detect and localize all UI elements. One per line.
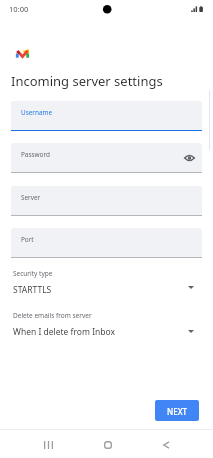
staticText: Security type xyxy=(13,269,53,278)
staticText: Port xyxy=(21,235,34,244)
button[interactable]: Recent apps xyxy=(40,437,56,453)
button[interactable]: Delete emails from server xyxy=(11,311,202,344)
staticText: Password xyxy=(21,150,50,159)
staticText: Incoming server settings xyxy=(11,72,163,90)
staticText: When I delete from Inbox xyxy=(13,326,115,338)
staticText: STARTTLS xyxy=(13,284,52,296)
staticText: Delete emails from server xyxy=(13,311,92,320)
button[interactable]: Server xyxy=(11,186,202,216)
other: Open Security type menu xyxy=(188,286,194,289)
staticText: NEXT xyxy=(167,406,188,417)
button[interactable]: Home xyxy=(99,436,116,453)
button[interactable]: Show password xyxy=(181,150,197,166)
staticText: Server xyxy=(21,193,41,202)
button[interactable]: Back xyxy=(158,437,174,453)
other: Open Delete emails from server menu xyxy=(188,330,194,333)
staticText: Username xyxy=(21,108,53,117)
button[interactable]: NEXT xyxy=(155,400,199,421)
staticText: 10:00 xyxy=(9,4,29,14)
button[interactable]: Security type xyxy=(11,269,202,302)
button[interactable]: Password xyxy=(11,143,202,173)
button[interactable]: Username xyxy=(11,101,202,131)
button[interactable]: Port xyxy=(11,228,202,258)
